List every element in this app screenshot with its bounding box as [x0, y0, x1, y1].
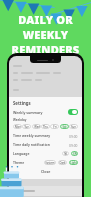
button[interactable]: Weekly summary — [13, 109, 78, 115]
staticText: Settings — [13, 100, 31, 106]
staticText: Light — [70, 161, 77, 165]
staticText: Thu — [43, 125, 48, 129]
staticText: Fri — [53, 125, 57, 129]
staticText: Time weekly summary — [13, 133, 51, 138]
staticText: System — [45, 161, 55, 165]
button[interactable]: Thu — [41, 124, 50, 129]
staticText: WEEKLY — [0, 27, 91, 42]
button[interactable]: Dark — [58, 160, 67, 165]
staticText: DAILY OR — [0, 12, 91, 27]
button[interactable]: Tue — [22, 124, 31, 129]
staticText: 09:00 — [69, 134, 78, 138]
staticText: Close — [41, 169, 51, 174]
button[interactable]: Light — [69, 160, 78, 165]
button[interactable]: Wed — [32, 124, 41, 129]
staticText: Dark — [59, 161, 66, 165]
staticText: Language — [13, 151, 30, 156]
button[interactable]: Fri — [50, 124, 59, 129]
staticText: Mon — [15, 125, 21, 129]
staticText: Weekly summary — [13, 110, 43, 115]
staticText: REMINDERS — [0, 42, 91, 57]
staticText: EN — [73, 152, 77, 156]
staticText: Weekday — [13, 118, 27, 122]
button[interactable]: EN — [71, 151, 78, 156]
button[interactable]: Time daily notification — [13, 142, 78, 147]
button[interactable]: System — [44, 160, 56, 165]
staticText: 09:00 — [69, 143, 78, 147]
staticText: Time daily notification — [13, 142, 50, 147]
staticText: NL — [64, 152, 68, 156]
button[interactable]: Time weekly summary — [13, 133, 78, 138]
staticText: Wed — [34, 125, 40, 129]
button[interactable]: Close — [13, 169, 78, 174]
button[interactable]: Sat — [60, 124, 69, 129]
button[interactable]: NL — [62, 151, 69, 156]
staticText: Tue — [24, 125, 29, 129]
button[interactable]: Sun — [69, 124, 78, 129]
button[interactable]: Weekly summary — [68, 109, 78, 115]
staticText: Sun — [71, 125, 76, 129]
staticText: Theme — [13, 160, 25, 165]
button[interactable]: Mon — [13, 124, 22, 129]
staticText: Sat — [62, 125, 67, 129]
